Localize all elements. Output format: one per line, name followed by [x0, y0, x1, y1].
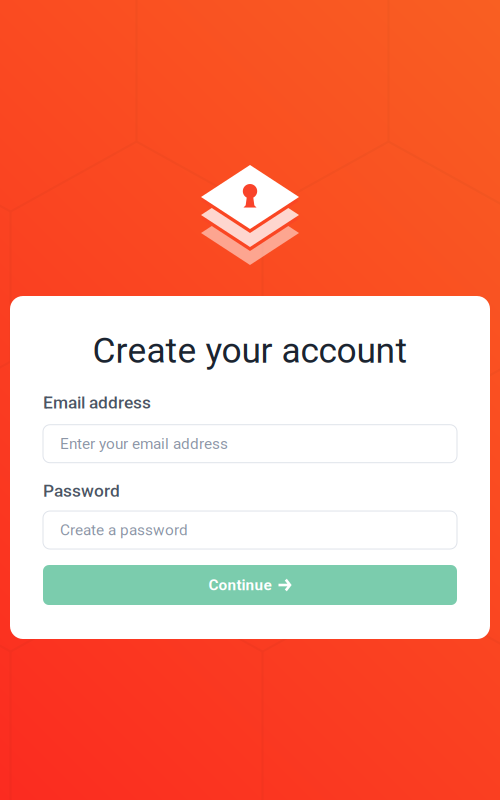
- staticText: Continue: [208, 576, 271, 594]
- staticText: Password: [43, 481, 120, 501]
- button[interactable]: Continue: [43, 565, 457, 605]
- staticText: Enter your email address: [60, 435, 228, 453]
- staticText: Email address: [43, 392, 151, 413]
- staticText: Create a password: [60, 521, 188, 539]
- staticText: Create your account: [92, 330, 407, 371]
